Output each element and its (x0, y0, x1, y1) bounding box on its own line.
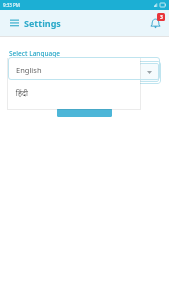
button[interactable]: English (8, 58, 140, 81)
staticText: English (16, 68, 139, 78)
button[interactable]: Save (57, 108, 112, 117)
staticText: 9:33 PM (3, 2, 20, 8)
button[interactable]: हिंदी (8, 81, 140, 105)
staticText: Settings (24, 17, 61, 29)
staticText: हिंदी (16, 88, 28, 98)
button[interactable]: English (8, 61, 161, 84)
button[interactable]: Notifications (146, 14, 164, 32)
staticText: Select Language (9, 49, 61, 58)
button[interactable]: English (8, 58, 140, 109)
button[interactable]: Open navigation menu (6, 15, 22, 31)
staticText: English (16, 65, 42, 75)
staticText: 3 (160, 14, 163, 21)
